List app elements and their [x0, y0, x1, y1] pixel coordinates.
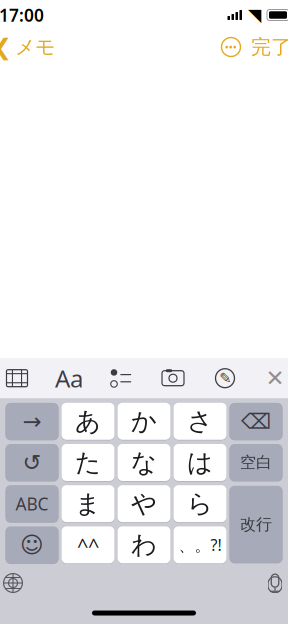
- button[interactable]: 改行: [229, 485, 282, 563]
- button[interactable]: Format: [47, 363, 91, 393]
- staticText: ✎: [219, 370, 231, 386]
- staticText: は: [187, 447, 213, 478]
- staticText: さ: [187, 406, 213, 437]
- staticText: な: [131, 447, 157, 478]
- button[interactable]: Dictation: [253, 565, 288, 601]
- button[interactable]: さ: [173, 402, 226, 440]
- staticText: Aa: [55, 362, 83, 394]
- button[interactable]: Next keyboard: [0, 565, 35, 601]
- button[interactable]: ^^: [61, 526, 114, 564]
- staticText: 完了: [251, 35, 288, 59]
- button[interactable]: 、。?!: [173, 526, 226, 564]
- button[interactable]: Camera: [151, 363, 195, 393]
- staticText: や: [131, 488, 157, 519]
- staticText: ⌫: [241, 409, 271, 433]
- staticText: メモ: [15, 35, 55, 59]
- button[interactable]: や: [117, 485, 170, 523]
- staticText: ✕: [265, 365, 284, 391]
- button[interactable]: 完了: [245, 29, 288, 65]
- staticText: わ: [131, 529, 157, 560]
- staticText: ↺: [22, 450, 41, 475]
- button[interactable]: た: [61, 443, 114, 482]
- button[interactable]: は: [173, 443, 226, 482]
- button[interactable]: ❮: [0, 28, 61, 66]
- staticText: 空白: [240, 453, 272, 472]
- button[interactable]: Close: [255, 363, 288, 393]
- button[interactable]: Checklist: [99, 363, 143, 393]
- staticText: →: [22, 408, 41, 434]
- button[interactable]: ⌫: [229, 402, 282, 440]
- staticText: 改行: [240, 514, 272, 534]
- button[interactable]: わ: [117, 526, 170, 564]
- button[interactable]: ま: [61, 485, 114, 523]
- staticText: ら: [187, 488, 213, 519]
- staticText: か: [131, 406, 157, 437]
- staticText: 17:00: [0, 3, 44, 26]
- staticText: あ: [75, 406, 101, 437]
- staticText: 、。?!: [178, 534, 221, 555]
- staticText: ☺: [20, 532, 44, 558]
- button[interactable]: More: [217, 33, 245, 61]
- staticText: •••: [225, 41, 237, 53]
- button[interactable]: Table: [0, 363, 39, 393]
- button[interactable]: ↺: [5, 443, 58, 482]
- button[interactable]: な: [117, 443, 170, 482]
- staticText: ◥: [248, 5, 261, 25]
- button[interactable]: →: [5, 402, 58, 440]
- button[interactable]: ☺: [5, 526, 58, 564]
- staticText: ABC: [15, 492, 48, 515]
- button[interactable]: Markup: [203, 363, 247, 393]
- staticText: た: [75, 447, 101, 478]
- button[interactable]: か: [117, 402, 170, 440]
- button[interactable]: あ: [61, 402, 114, 440]
- button[interactable]: ら: [173, 485, 226, 523]
- button[interactable]: ABC: [5, 485, 58, 523]
- button[interactable]: 空白: [229, 443, 282, 482]
- staticText: ま: [75, 488, 101, 519]
- staticText: ^^: [77, 532, 99, 558]
- staticText: ❮: [0, 34, 12, 60]
